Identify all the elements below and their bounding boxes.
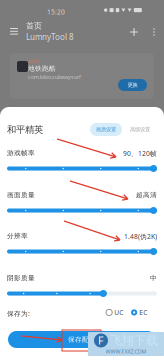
staticText: 画质设置 bbox=[96, 126, 116, 133]
staticText: 地铁跑酷 bbox=[28, 64, 56, 73]
button[interactable]: Add bbox=[127, 25, 141, 39]
staticText: 分辨率 bbox=[7, 232, 28, 240]
staticText: 15:20 bbox=[47, 7, 65, 16]
staticText: WWW.FXXZ.COM bbox=[105, 348, 146, 355]
button[interactable]: UC bbox=[106, 308, 123, 317]
button[interactable]: 更换 bbox=[118, 79, 147, 91]
button[interactable]: EC bbox=[131, 308, 147, 317]
button[interactable]: 高级设置 bbox=[125, 123, 155, 136]
staticText: F bbox=[98, 333, 104, 348]
staticText: 超高清 bbox=[136, 191, 157, 199]
button[interactable]: 保存配置 bbox=[8, 331, 156, 348]
staticText: 保存配置 bbox=[68, 335, 96, 344]
staticText: 和平精英 bbox=[7, 124, 43, 135]
staticText: UC bbox=[114, 308, 123, 317]
button[interactable]: Menu bbox=[7, 25, 21, 38]
staticText: 90、120帧 bbox=[123, 149, 157, 158]
button[interactable]: 画质设置 bbox=[90, 123, 122, 136]
staticText: com.kiloo.subwaysurf bbox=[28, 73, 81, 81]
button[interactable]: More options bbox=[149, 25, 159, 39]
staticText: 首页 bbox=[26, 21, 42, 31]
staticText: 阴影质量 bbox=[7, 274, 35, 282]
staticText: 游戏帧率 bbox=[7, 149, 35, 157]
staticText: LumnyTool 8 bbox=[26, 31, 74, 42]
staticText: 未选择 bbox=[28, 59, 40, 64]
staticText: 更换 bbox=[127, 82, 137, 88]
staticText: 画面质量 bbox=[7, 191, 35, 199]
staticText: 高级设置 bbox=[130, 126, 150, 133]
staticText: EC bbox=[139, 308, 147, 317]
staticText: 中 bbox=[150, 274, 157, 282]
staticText: 保存为: bbox=[7, 309, 30, 318]
staticText: 飞翔下载 bbox=[110, 333, 158, 348]
staticText: 1.48(伪2K) bbox=[124, 232, 157, 241]
